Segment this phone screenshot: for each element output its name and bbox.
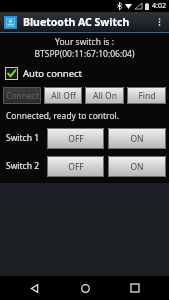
button[interactable]: OFF [47,128,104,149]
staticText: Switch 1 [6,132,40,144]
staticText: ON [130,133,144,145]
button[interactable]: ON [108,128,166,149]
button[interactable]: All Off [44,87,82,104]
staticText: Switch 2 [6,160,40,172]
button[interactable]: Connect [3,87,41,104]
button[interactable]: Find [127,87,166,104]
staticText: All Off [51,90,76,102]
staticText: Connected, ready to control. [6,110,169,122]
staticText: Your switch is : BTSPP(00:11:67:10:06:04… [6,36,163,59]
staticText: Connect [6,90,39,102]
staticText: OFF [68,133,84,145]
button[interactable]: All On [85,87,124,104]
button[interactable]: ON [108,156,166,177]
staticText: All On [93,90,117,102]
button[interactable]: Back [17,276,51,300]
button[interactable]: Auto connect [5,64,82,82]
staticText: Find [138,90,156,102]
button[interactable]: OFF [47,156,104,177]
staticText: OFF [68,161,84,173]
staticText: Auto connect [23,67,82,80]
button[interactable]: More options [153,12,165,32]
button[interactable]: Home [68,276,102,300]
button[interactable]: Recent apps [118,276,152,300]
staticText: 4:02 [152,1,166,11]
staticText: Bluetooth AC Switch [23,15,153,29]
staticText: ON [130,161,144,173]
